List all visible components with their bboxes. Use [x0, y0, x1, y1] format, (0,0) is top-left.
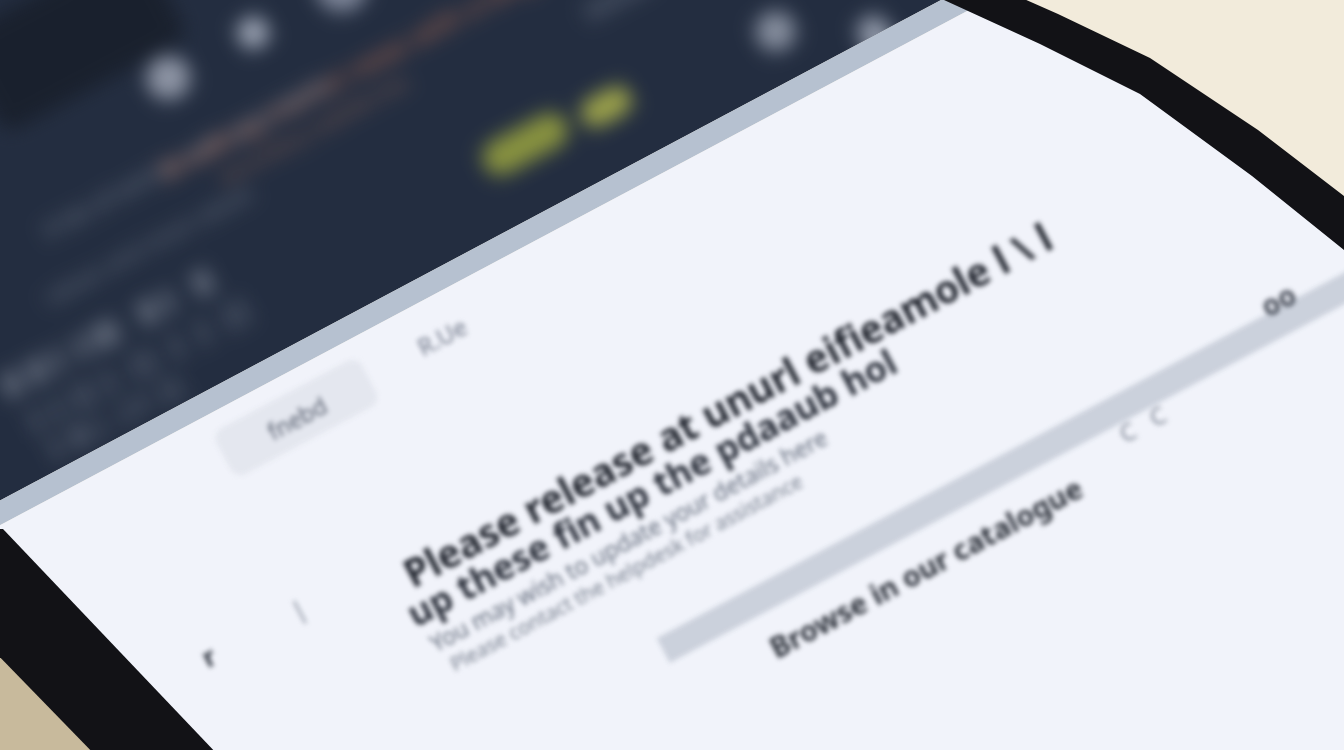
- staticText: R.Ue: [411, 309, 472, 363]
- staticText: fnebd: [262, 389, 333, 446]
- staticText: r: [195, 638, 222, 674]
- staticText: | | || | || | | ||: [18, 287, 257, 438]
- staticText: values and more values: [39, 178, 258, 312]
- staticText: Please contact the helpdesk for assistan…: [445, 467, 807, 677]
- staticText: oo: [1254, 274, 1303, 325]
- staticText: Browse in our catalogue: [762, 468, 1089, 666]
- staticText: I II | | I ||: [43, 365, 189, 465]
- staticText: up these fin up the pdaaub hol: [398, 337, 906, 638]
- staticText: You may wish to update your details here: [424, 421, 832, 658]
- staticText: secondary subtitle line: [214, 67, 413, 191]
- button[interactable]: fnebd: [211, 356, 381, 479]
- staticText: C C: [1113, 397, 1172, 450]
- staticText: |: [283, 589, 313, 627]
- staticText: IIIIIIIIII: [578, 0, 658, 27]
- staticText: Breaking market news with a long headlin…: [152, 0, 643, 188]
- staticText: II II I I III II I II: [0, 259, 221, 406]
- staticText: Please release at unurl eifieamole l \ l: [393, 210, 1061, 599]
- staticText: A list of entries with grey labels: [37, 67, 334, 244]
- button[interactable]: Phone displaying an article: [0, 0, 1344, 750]
